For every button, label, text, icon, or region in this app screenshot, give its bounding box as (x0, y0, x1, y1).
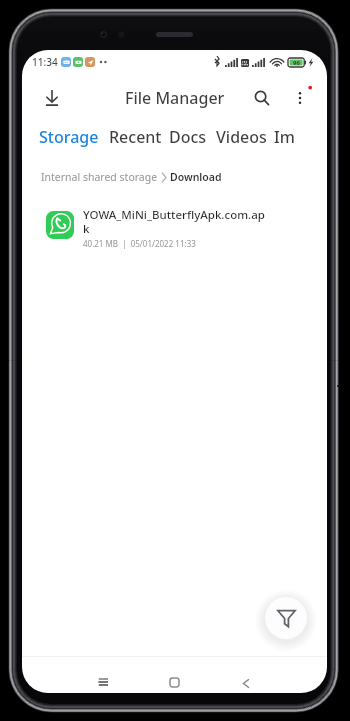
staticText: 11:34 (32, 55, 58, 69)
staticText: File Manager (125, 87, 225, 109)
staticText: Docs (169, 126, 207, 148)
staticText: Storage (39, 126, 99, 148)
staticText: Recent (109, 126, 162, 148)
staticText: Videos (216, 126, 267, 148)
button[interactable]: Search (248, 84, 276, 112)
button[interactable]: Downloads (40, 86, 64, 110)
button[interactable]: Back (232, 669, 260, 693)
staticText: 96 (293, 59, 300, 67)
button[interactable]: Filter (265, 597, 307, 639)
button[interactable]: Docs (169, 126, 207, 148)
button[interactable]: Im (274, 126, 295, 148)
button[interactable]: Home (160, 668, 188, 693)
staticText: Im (274, 126, 295, 148)
staticText: Download (170, 170, 222, 184)
button[interactable]: More options (286, 84, 314, 112)
staticText: 40.21 MB | 05/01/2022 11:33 (83, 238, 196, 249)
staticText: Internal shared storage (41, 170, 158, 184)
button[interactable]: Recent (109, 126, 162, 148)
button[interactable]: YOWA_MiNi_ButterflyApk.com.apk (22, 207, 327, 253)
button[interactable]: Storage (39, 126, 99, 148)
button[interactable]: Videos (216, 126, 267, 148)
button[interactable]: Recent apps (89, 668, 117, 693)
staticText: YOWA_MiNi_ButterflyApk.com.apk (83, 207, 269, 236)
